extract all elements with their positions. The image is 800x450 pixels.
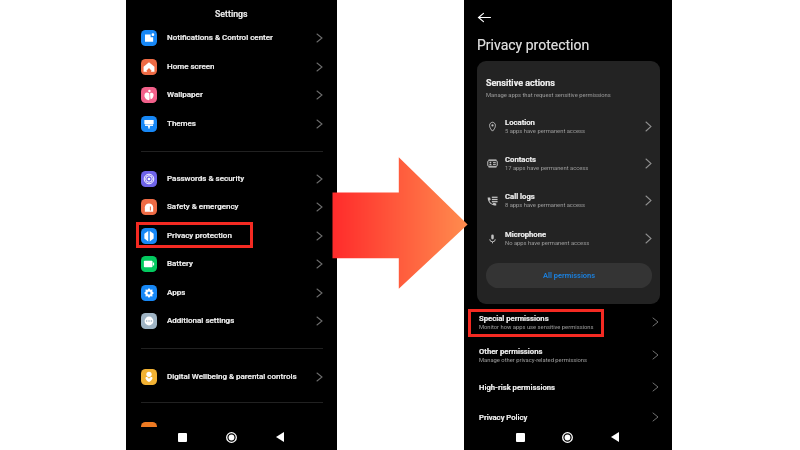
staticText: Digital Wellbeing & parental controls [167, 372, 317, 381]
staticText: Wallpaper [167, 90, 317, 99]
staticText: 17 apps have permanent access [505, 165, 589, 172]
staticText: Battery [167, 259, 317, 268]
staticText: Special permissions [479, 314, 549, 323]
button[interactable]: Apps [126, 278, 337, 307]
staticText: 8 apps have permanent access [505, 202, 585, 209]
staticText: High-risk permissions [479, 383, 556, 392]
staticText: Google [167, 425, 322, 434]
button[interactable]: Additional settings [126, 306, 337, 335]
button[interactable]: Back [608, 430, 622, 444]
staticText: Contacts [505, 155, 536, 164]
staticText: Themes [167, 119, 317, 128]
button[interactable]: High-risk permissions [464, 372, 672, 402]
button[interactable]: Recents [175, 430, 189, 444]
button[interactable]: Special permissions [464, 307, 672, 337]
button[interactable]: Notifications & Control center [126, 23, 337, 52]
staticText: Home screen [167, 62, 317, 71]
button[interactable]: Back [273, 430, 287, 444]
staticText: Other permissions [479, 347, 543, 356]
staticText: Manage other privacy-related permissions [479, 357, 588, 364]
button[interactable]: Privacy Policy [464, 402, 672, 432]
staticText: Settings [215, 9, 248, 19]
button[interactable]: All permissions [486, 263, 652, 288]
button[interactable]: Wallpaper [126, 80, 337, 109]
button[interactable]: Home screen [126, 52, 337, 81]
button[interactable]: Home [224, 430, 238, 444]
button[interactable]: Other permissions [464, 340, 672, 370]
staticText: Privacy protection [477, 37, 590, 53]
button[interactable]: Call logs [477, 182, 660, 219]
staticText: Microphone [505, 230, 547, 239]
staticText: Privacy Policy [479, 413, 528, 422]
staticText: All permissions [543, 271, 596, 280]
staticText: Passwords & security [167, 174, 317, 183]
staticText: Safety & emergency [167, 202, 317, 211]
staticText: Notifications & Control center [167, 33, 317, 42]
button[interactable]: Privacy protection [126, 221, 337, 250]
button[interactable]: Back [478, 11, 491, 24]
button[interactable]: Digital Wellbeing & parental controls [126, 362, 337, 391]
staticText: Privacy protection [167, 231, 317, 240]
staticText: No apps have permanent access [505, 240, 590, 247]
button[interactable]: Battery [126, 249, 337, 278]
staticText: Manage apps that request sensitive permi… [486, 92, 611, 99]
button[interactable]: Location [477, 108, 660, 145]
button[interactable]: Google [126, 415, 337, 444]
staticText: Apps [167, 288, 317, 297]
staticText: Call logs [505, 192, 535, 201]
button[interactable]: Themes [126, 109, 337, 138]
staticText: Location [505, 118, 535, 127]
staticText: Additional settings [167, 316, 317, 325]
button[interactable]: Recents [513, 430, 527, 444]
button[interactable]: Home [560, 430, 574, 444]
button[interactable]: Contacts [477, 145, 660, 182]
staticText: Monitor how apps use sensitive permissio… [479, 324, 594, 331]
staticText: Sensitive actions [486, 78, 555, 89]
button[interactable]: Safety & emergency [126, 192, 337, 221]
button[interactable]: Microphone [477, 220, 660, 257]
staticText: 5 apps have permanent access [505, 128, 585, 135]
button[interactable]: Passwords & security [126, 164, 337, 193]
